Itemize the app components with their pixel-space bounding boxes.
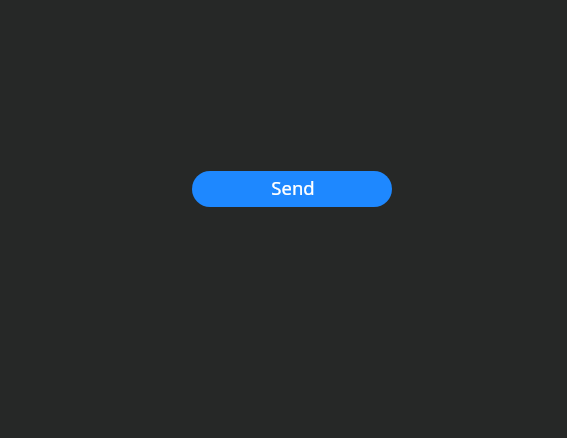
staticText: Send <box>271 175 315 200</box>
button[interactable]: Send <box>192 171 392 207</box>
